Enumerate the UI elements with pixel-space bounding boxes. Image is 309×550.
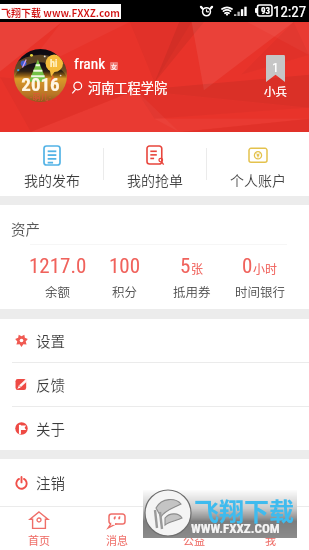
button[interactable]: 个人账户 <box>207 132 309 196</box>
button[interactable]: 关于 <box>0 407 309 450</box>
staticText: frank <box>74 55 106 73</box>
staticText: 个人账户 <box>230 170 286 190</box>
staticText: 我 <box>265 532 276 548</box>
button[interactable]: 公益 <box>155 507 232 550</box>
staticText: 河南工程学院 <box>88 78 168 97</box>
staticText: 余额 <box>45 282 71 300</box>
button[interactable]: 设置 <box>0 319 309 362</box>
staticText: 1 <box>272 59 279 75</box>
staticText: WWW.FXXZ.COM <box>191 521 280 536</box>
staticText: 小兵 <box>264 83 287 100</box>
staticText: 时间银行 <box>235 282 286 300</box>
button[interactable]: 1217.0 <box>24 245 91 309</box>
button[interactable]: 5 <box>158 245 226 309</box>
staticText: 设置 <box>36 330 65 351</box>
staticText: 消息 <box>106 532 128 548</box>
button[interactable]: 头像 <box>14 49 67 102</box>
staticText: 2016 <box>14 73 67 95</box>
button[interactable]: 0 <box>226 245 294 309</box>
staticText: 资产 <box>11 218 40 239</box>
button[interactable]: 100 <box>91 245 158 309</box>
staticText: 公益 <box>183 532 205 548</box>
button[interactable]: 消息 <box>78 507 155 550</box>
staticText: 5 <box>180 254 191 279</box>
staticText: 注销 <box>36 472 65 493</box>
staticText: -萌儿- <box>14 91 67 102</box>
staticText: 100 <box>109 254 141 279</box>
button[interactable]: 我 <box>232 507 309 550</box>
staticText: 抵用券 <box>173 282 211 300</box>
staticText: 12:27 <box>273 3 307 21</box>
staticText: hi <box>50 58 58 70</box>
staticText: 反馈 <box>36 374 65 395</box>
staticText: 女 <box>111 62 118 70</box>
staticText: 飞翔下载 <box>194 492 295 528</box>
staticText: 我的发布 <box>24 170 80 190</box>
button[interactable]: 我的抢单 <box>104 132 206 196</box>
staticText: 首页 <box>28 532 50 548</box>
staticText: 93 <box>261 6 271 17</box>
button[interactable]: 等级 小兵 <box>264 55 287 100</box>
staticText: 1217.0 <box>29 254 87 279</box>
staticText: 我的抢单 <box>127 170 183 190</box>
staticText: 飞翔下载 www.FXXZ.com <box>1 5 120 19</box>
staticText: 积分 <box>112 282 138 300</box>
staticText: 小时 <box>253 260 278 277</box>
staticText: 张 <box>191 260 204 277</box>
staticText: 关于 <box>36 418 65 439</box>
button[interactable]: 我的发布 <box>0 132 103 196</box>
staticText: 0 <box>242 254 253 279</box>
button[interactable]: 首页 <box>0 507 78 550</box>
button[interactable]: 注销 <box>0 459 309 506</box>
button[interactable]: 反馈 <box>0 363 309 406</box>
